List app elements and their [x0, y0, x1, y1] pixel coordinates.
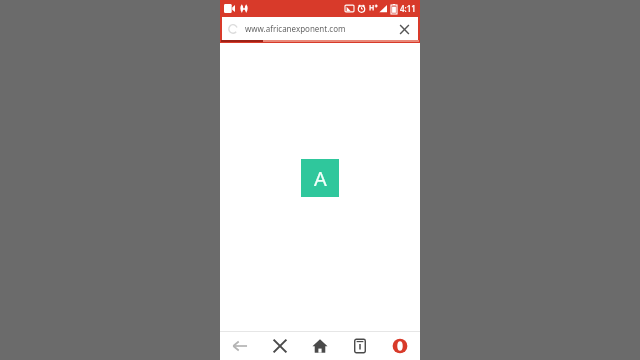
- button[interactable]: Stop loading: [396, 21, 412, 37]
- staticText: www.africanexponent.com: [245, 23, 396, 34]
- button[interactable]: Home: [300, 332, 340, 360]
- button[interactable]: Stop: [260, 332, 300, 360]
- button[interactable]: Back: [220, 332, 260, 360]
- button[interactable]: Opera menu: [380, 332, 420, 360]
- staticText: 4:11: [400, 3, 416, 14]
- button[interactable]: www.africanexponent.com: [222, 17, 418, 40]
- staticText: A: [314, 165, 327, 192]
- button[interactable]: Tabs: [340, 332, 380, 360]
